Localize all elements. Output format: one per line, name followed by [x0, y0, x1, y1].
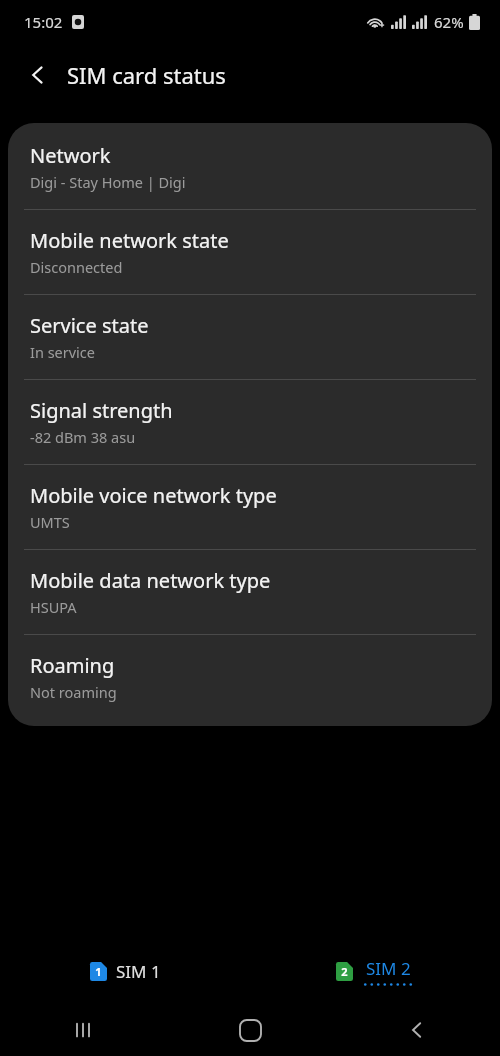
- staticText: -82 dBm 38 asu: [30, 427, 136, 447]
- staticText: 15:02: [24, 12, 63, 32]
- staticText: HSUPA: [30, 597, 77, 617]
- button[interactable]: Mobile network state: [8, 210, 492, 294]
- button[interactable]: Home: [222, 1004, 278, 1056]
- button[interactable]: Network: [8, 123, 492, 209]
- staticText: SIM 1: [116, 960, 161, 983]
- staticText: 62%: [434, 12, 464, 32]
- staticText: SIM 2: [366, 957, 411, 980]
- button[interactable]: Service state: [8, 295, 492, 379]
- staticText: Disconnected: [30, 257, 123, 277]
- button[interactable]: 2: [326, 951, 424, 992]
- button[interactable]: Signal strength: [8, 380, 492, 464]
- staticText: Service state: [30, 312, 149, 339]
- staticText: Roaming: [30, 652, 115, 679]
- staticText: SIM card status: [67, 60, 226, 90]
- button[interactable]: Roaming: [8, 635, 492, 726]
- button[interactable]: Mobile voice network type: [8, 465, 492, 549]
- button[interactable]: Mobile data network type: [8, 550, 492, 634]
- button[interactable]: 1: [80, 954, 171, 989]
- button[interactable]: Recents: [55, 1004, 111, 1056]
- staticText: Mobile voice network type: [30, 482, 277, 509]
- staticText: UMTS: [30, 512, 70, 532]
- staticText: Mobile network state: [30, 227, 229, 254]
- button[interactable]: Back: [389, 1004, 445, 1056]
- button[interactable]: Back: [14, 51, 62, 99]
- staticText: In service: [30, 342, 96, 362]
- staticText: Mobile data network type: [30, 567, 271, 594]
- staticText: Network: [30, 142, 111, 169]
- staticText: Digi - Stay Home | Digi: [30, 172, 186, 192]
- staticText: 1: [95, 964, 102, 979]
- staticText: Signal strength: [30, 397, 173, 424]
- staticText: Not roaming: [30, 682, 117, 702]
- staticText: 2: [341, 964, 348, 979]
